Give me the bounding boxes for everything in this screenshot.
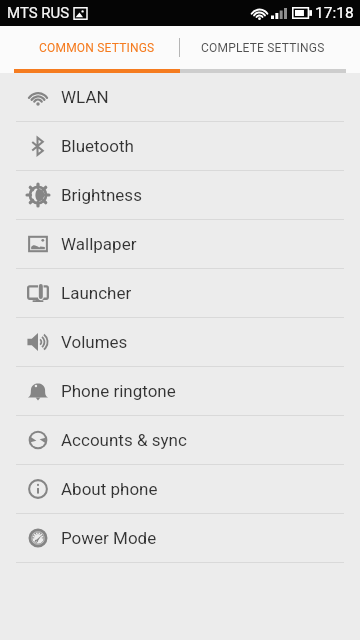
button[interactable]: Bluetooth	[0, 122, 360, 171]
staticText: Brightness	[61, 185, 142, 205]
staticText: Accounts & sync	[61, 430, 187, 450]
staticText: 17:18	[315, 4, 354, 22]
staticText: Volumes	[61, 332, 128, 352]
staticText: About phone	[61, 479, 158, 499]
button[interactable]: COMMON SETTINGS	[0, 26, 179, 69]
button[interactable]: Phone ringtone	[0, 367, 360, 416]
staticText: Power Mode	[61, 528, 157, 548]
staticText: Phone ringtone	[61, 381, 176, 401]
button[interactable]: Accounts & sync	[0, 416, 360, 465]
staticText: COMMON SETTINGS	[39, 41, 155, 55]
button[interactable]: Brightness	[0, 171, 360, 220]
button[interactable]: Volumes	[0, 318, 360, 367]
staticText: Launcher	[61, 283, 132, 303]
staticText: COMPLETE SETTINGS	[201, 41, 325, 55]
button[interactable]: Wallpaper	[0, 220, 360, 269]
staticText: MTS RUS	[7, 4, 70, 22]
staticText: WLAN	[61, 87, 109, 107]
staticText: Bluetooth	[61, 136, 134, 156]
button[interactable]: Launcher	[0, 269, 360, 318]
button[interactable]: WLAN	[0, 73, 360, 122]
button[interactable]: COMPLETE SETTINGS	[180, 26, 360, 69]
staticText: Wallpaper	[61, 234, 137, 254]
button[interactable]: About phone	[0, 465, 360, 514]
button[interactable]: Power Mode	[0, 514, 360, 563]
